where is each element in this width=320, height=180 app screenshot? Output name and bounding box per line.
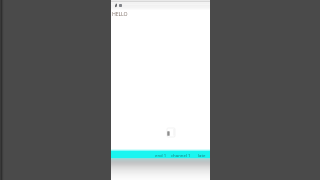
button[interactable]: Navigate up [113,1,118,8]
button[interactable]: channel 1 [171,151,191,158]
staticText: channel 1 [171,152,191,158]
staticText: HELLO [112,10,128,17]
button[interactable]: Edit [167,128,175,137]
button[interactable]: Menu [118,3,122,7]
button[interactable]: end 1 [155,151,167,158]
button[interactable]: late [198,151,206,158]
staticText: end 1 [155,152,167,158]
staticText: late [198,152,206,158]
